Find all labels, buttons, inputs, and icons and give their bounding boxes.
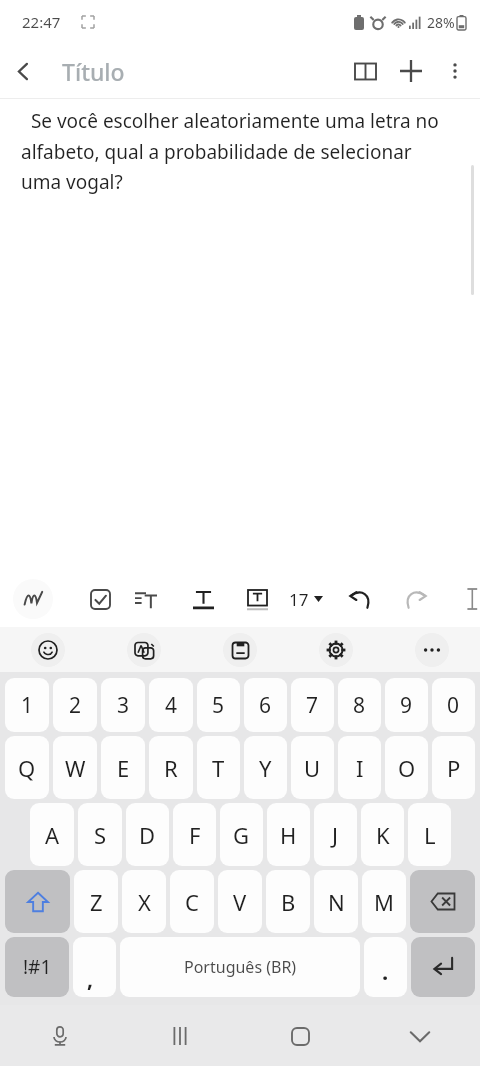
button[interactable]: Home [276, 1012, 324, 1060]
staticText: A [45, 820, 60, 850]
staticText: O [398, 753, 416, 783]
staticText: X [138, 887, 151, 917]
button[interactable]: Add [388, 48, 434, 94]
staticText: F [189, 820, 201, 850]
staticText: K [376, 820, 390, 850]
staticText: Z [90, 887, 103, 917]
button[interactable]: Backspace [410, 870, 475, 933]
staticText: H [280, 820, 297, 850]
button[interactable]: Space, Português (BR) [120, 937, 360, 997]
button[interactable]: Reading mode [342, 48, 388, 94]
button[interactable]: Checklist [80, 579, 120, 619]
button[interactable]: Redo [395, 579, 435, 619]
staticText: 3 [117, 691, 130, 720]
button[interactable]: A [30, 803, 74, 866]
staticText: G [233, 820, 250, 850]
button[interactable]: Keyboard settings [319, 633, 353, 667]
button[interactable]: M [362, 870, 406, 933]
button[interactable]: X [122, 870, 166, 933]
staticText: 8 [353, 691, 366, 720]
button[interactable]: Enter [411, 937, 475, 997]
staticText: T [212, 753, 225, 783]
button[interactable]: Q [5, 736, 49, 799]
button[interactable]: Back [0, 48, 46, 94]
staticText: R [164, 753, 178, 783]
staticText: D [139, 820, 156, 850]
button[interactable]: H [267, 803, 310, 866]
button[interactable]: Z [74, 870, 118, 933]
button[interactable]: Undo [340, 579, 380, 619]
staticText: P [447, 753, 461, 783]
button[interactable]: Paragraph style [126, 579, 166, 619]
button[interactable]: K [361, 803, 404, 866]
button[interactable]: R [149, 736, 193, 799]
staticText: , [87, 965, 93, 994]
button[interactable]: Hide keyboard [396, 1012, 444, 1060]
button[interactable]: 1 [5, 678, 49, 732]
button[interactable]: More options [415, 633, 449, 667]
button[interactable]: Emoji [31, 633, 65, 667]
staticText: N [328, 887, 345, 917]
button[interactable]: Clipboard [223, 633, 257, 667]
button[interactable]: O [385, 736, 428, 799]
button[interactable]: L [408, 803, 451, 866]
button[interactable]: Text format [183, 579, 223, 619]
button[interactable]: P [432, 736, 475, 799]
staticText: 5 [212, 691, 225, 720]
button[interactable]: 5 [197, 678, 240, 732]
button[interactable]: U [291, 736, 334, 799]
staticText: 0 [447, 691, 460, 720]
staticText: 7 [306, 691, 319, 720]
button[interactable]: 6 [244, 678, 287, 732]
button[interactable]: 7 [291, 678, 334, 732]
button[interactable]: 3 [101, 678, 145, 732]
button[interactable]: N [314, 870, 358, 933]
button[interactable]: 17 [285, 579, 327, 619]
button[interactable]: D [126, 803, 169, 866]
button[interactable]: 0 [432, 678, 475, 732]
button[interactable]: C [170, 870, 214, 933]
staticText: 2 [69, 691, 82, 720]
staticText: M [374, 887, 394, 917]
button[interactable]: Voice input [36, 1012, 84, 1060]
staticText: Q [18, 753, 36, 783]
button[interactable]: W [53, 736, 97, 799]
button[interactable]: More options [434, 50, 476, 92]
staticText: B [281, 887, 296, 917]
staticText: Português (BR) [184, 956, 297, 978]
staticText: 4 [165, 691, 178, 720]
button[interactable]: Text box [237, 579, 277, 619]
staticText: J [332, 820, 339, 850]
button[interactable]: T [197, 736, 240, 799]
button[interactable]: 2 [53, 678, 97, 732]
button[interactable]: E [101, 736, 145, 799]
button[interactable]: 4 [149, 678, 193, 732]
staticText: . [382, 956, 389, 986]
button[interactable]: F [173, 803, 216, 866]
staticText: Título [62, 56, 125, 87]
button[interactable]: Shift [5, 870, 70, 933]
button[interactable]: S [78, 803, 122, 866]
button[interactable]: B [266, 870, 310, 933]
button[interactable]: Recents [156, 1012, 204, 1060]
staticText: U [304, 753, 321, 783]
button[interactable]: Period [364, 937, 407, 997]
staticText: I [356, 753, 364, 783]
button[interactable]: Y [244, 736, 287, 799]
button[interactable]: J [314, 803, 357, 866]
button[interactable]: Handwriting [13, 579, 53, 619]
button[interactable]: G [220, 803, 263, 866]
staticText: 22:47 [22, 12, 61, 32]
button[interactable]: Symbols [5, 937, 69, 997]
button[interactable]: Comma [73, 937, 116, 997]
button[interactable]: 8 [338, 678, 381, 732]
staticText: 17 [289, 588, 309, 611]
staticText: W [65, 753, 86, 783]
button[interactable]: 9 [385, 678, 428, 732]
button[interactable]: I [338, 736, 381, 799]
staticText: S [94, 820, 107, 850]
staticText: Y [259, 753, 272, 783]
staticText: L [424, 820, 436, 850]
button[interactable]: Translate [127, 633, 161, 667]
button[interactable]: V [218, 870, 262, 933]
